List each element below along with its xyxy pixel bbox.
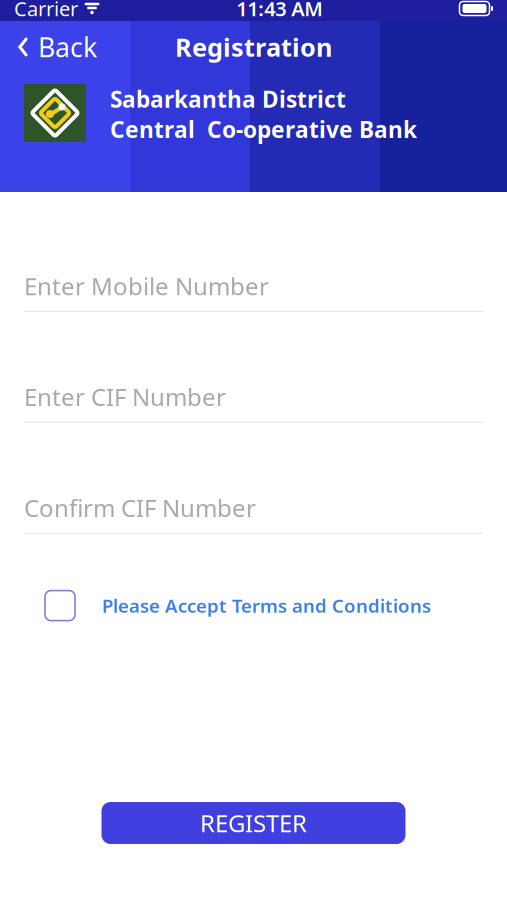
staticText: Sabarkantha District Central Co-operativ…	[110, 84, 417, 144]
staticText: Please Accept Terms and Conditions	[102, 593, 431, 618]
staticText: REGISTER	[200, 807, 307, 839]
staticText: Enter Mobile Number	[24, 270, 269, 302]
staticText: 11:43 AM	[236, 0, 323, 22]
staticText: Enter CIF Number	[24, 381, 226, 413]
button[interactable]: REGISTER	[101, 802, 405, 844]
staticText: Registration	[175, 30, 332, 64]
staticText: Back	[38, 29, 97, 65]
button[interactable]: Please Accept Terms and Conditions	[45, 585, 431, 627]
button[interactable]: Back	[0, 25, 113, 69]
staticText: Carrier	[14, 0, 78, 22]
staticText: Confirm CIF Number	[24, 492, 256, 524]
